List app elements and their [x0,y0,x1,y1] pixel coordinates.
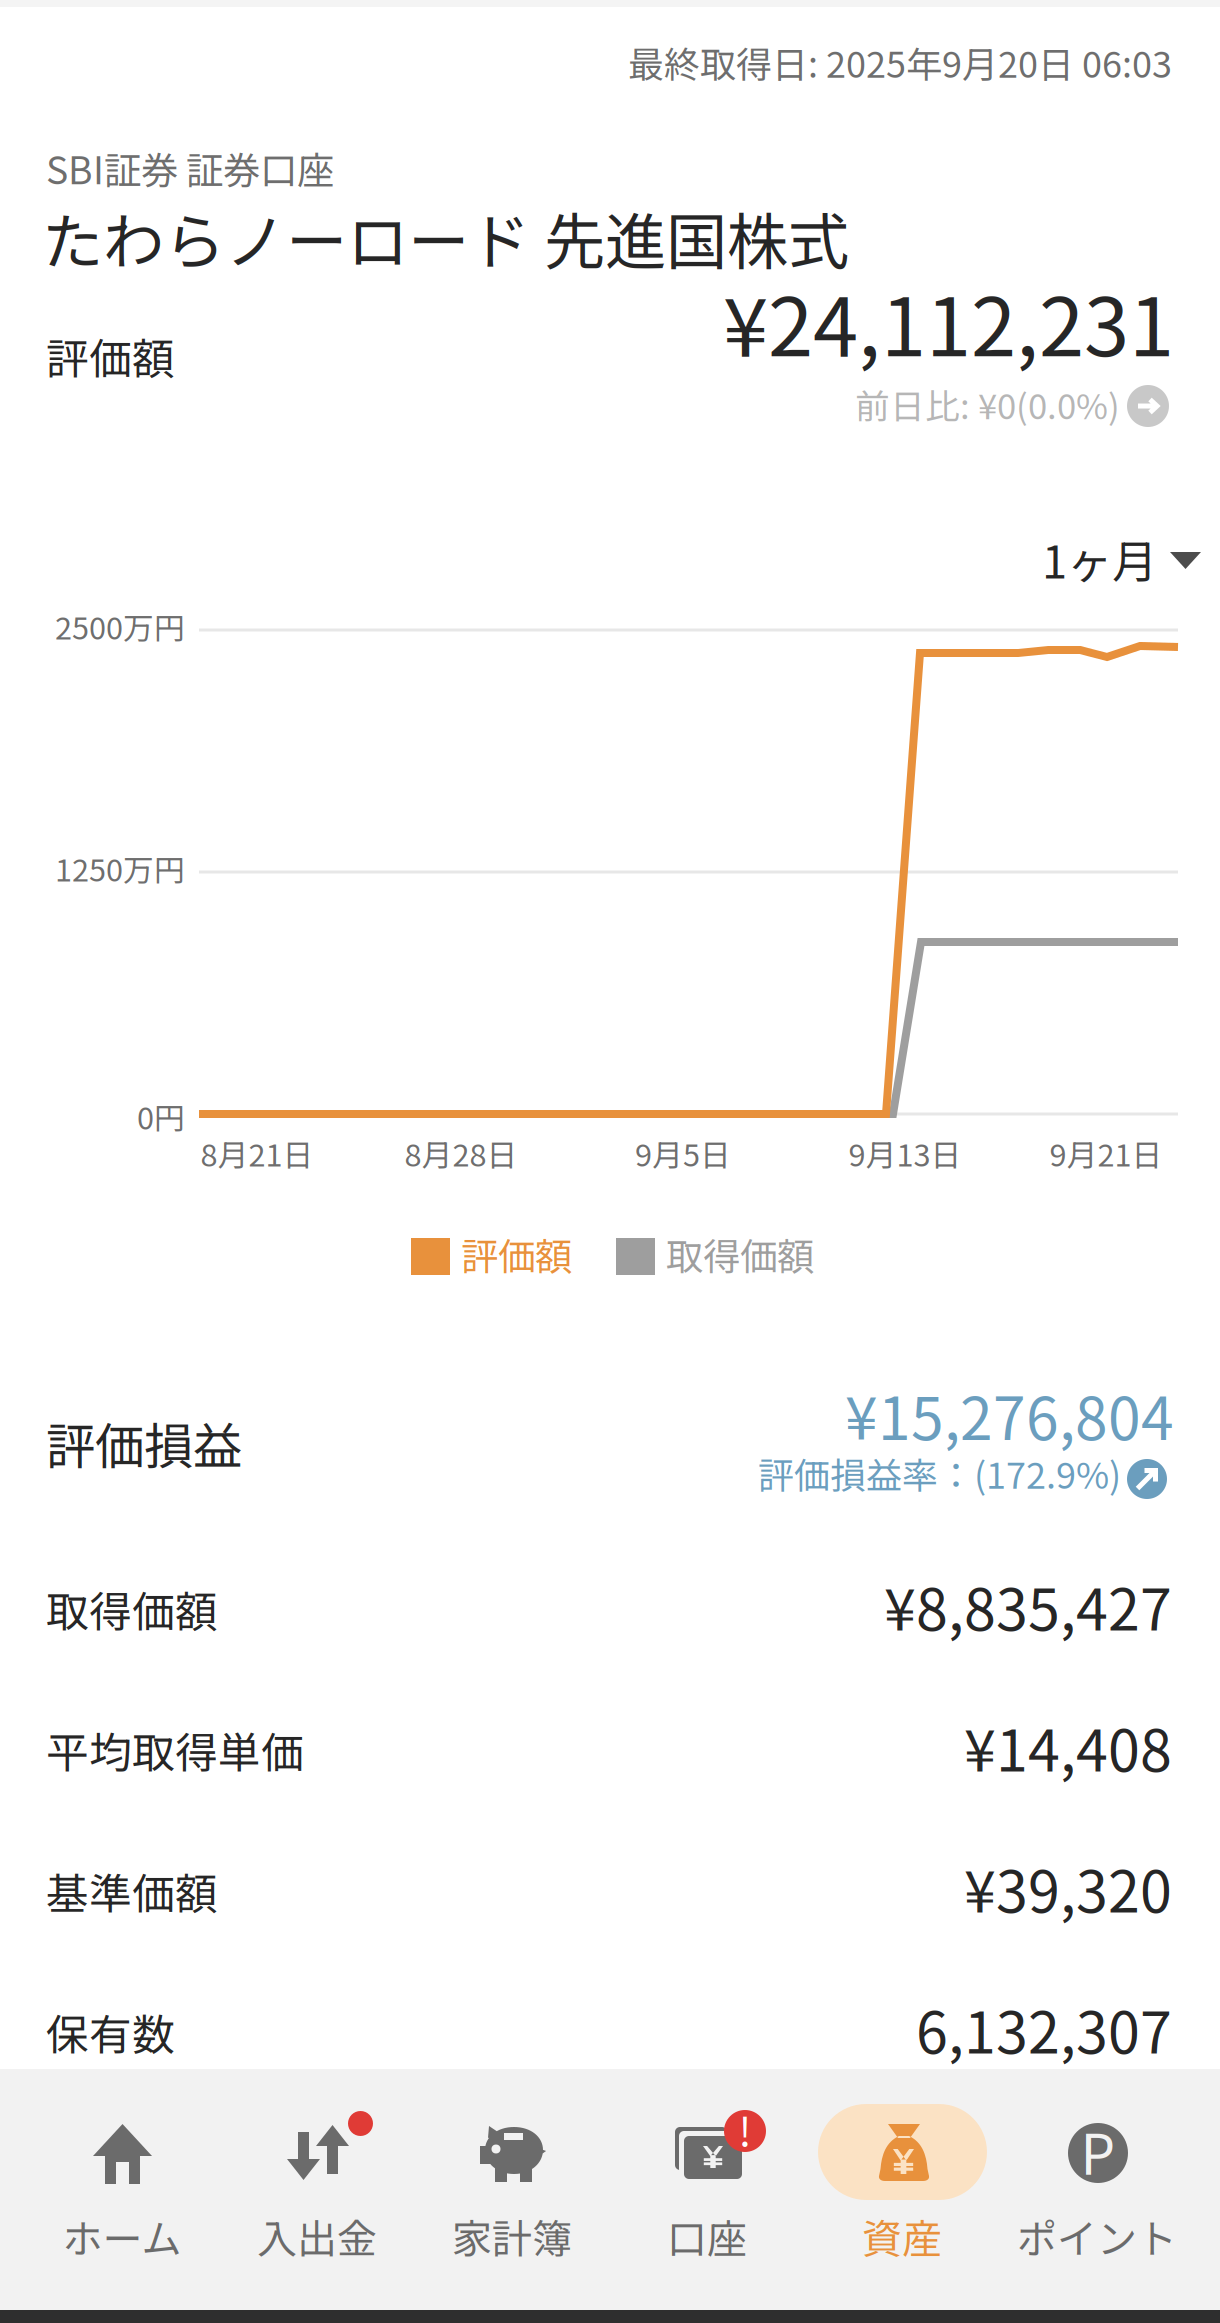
staticText: 前日比: ¥0(0.0%) [855,379,1120,429]
button[interactable]: 前日比: ¥0(0.0%) [840,372,1172,440]
staticText: 2500万円 [55,604,185,648]
staticText: 保有数 [46,2001,175,2063]
staticText: 1ヶ月 [1042,526,1157,592]
staticText: ! [738,2100,751,2158]
staticText: ¥8,835,427 [884,1564,1172,1647]
staticText: 家計簿 [452,2207,572,2265]
button[interactable]: 資産 [801,2069,1003,2310]
staticText: 取得価額 [46,1578,218,1640]
staticText: 口座 [667,2207,747,2265]
button[interactable]: ホーム [21,2069,223,2310]
staticText: 最終取得日: 2025年9月20日 06:03 [628,36,1172,88]
button[interactable]: 入出金 [216,2069,418,2310]
staticText: ホーム [62,2207,181,2265]
staticText: SBI証券 証券口座 [46,141,334,195]
button[interactable]: ! [606,2069,808,2310]
staticText: 評価額 [461,1227,572,1281]
button[interactable]: 評価損益 [0,1356,1220,1506]
staticText: 9月5日 [635,1131,731,1175]
staticText: ポイント [1017,2207,1177,2265]
button[interactable]: 平均取得単価 [0,1669,1220,1810]
staticText: 9月13日 [848,1131,961,1175]
button[interactable]: P [996,2069,1198,2310]
staticText: 評価損益 [46,1407,242,1478]
staticText: ¥24,112,231 [723,262,1174,380]
staticText: 1250万円 [55,846,185,890]
staticText: ¥39,320 [964,1846,1172,1929]
staticText: 平均取得単価 [46,1719,304,1781]
button[interactable]: 家計簿 [411,2069,613,2310]
staticText: 資産 [862,2207,942,2265]
staticText: 評価損益率：(172.9%) [758,1447,1121,1499]
button[interactable]: 取得価額 [0,1528,1220,1669]
button[interactable]: 1ヶ月 [1012,512,1220,608]
staticText: 8月28日 [404,1131,517,1175]
staticText: 取得価額 [666,1227,814,1281]
staticText: 基準価額 [46,1860,218,1922]
staticText: P [1080,2111,1115,2191]
staticText: 8月21日 [200,1131,313,1175]
button[interactable]: 基準価額 [0,1810,1220,1951]
staticText: 入出金 [257,2207,377,2265]
button[interactable]: 保有数 [0,1951,1220,2092]
staticText: ¥14,408 [964,1705,1172,1788]
staticText: ¥15,276,804 [845,1372,1174,1457]
staticText: 0円 [137,1094,185,1138]
staticText: 9月21日 [1049,1131,1162,1175]
staticText: たわらノーロード 先進国株式 [42,193,849,282]
staticText: 6,132,307 [916,1987,1172,2070]
staticText: 評価額 [46,325,175,387]
